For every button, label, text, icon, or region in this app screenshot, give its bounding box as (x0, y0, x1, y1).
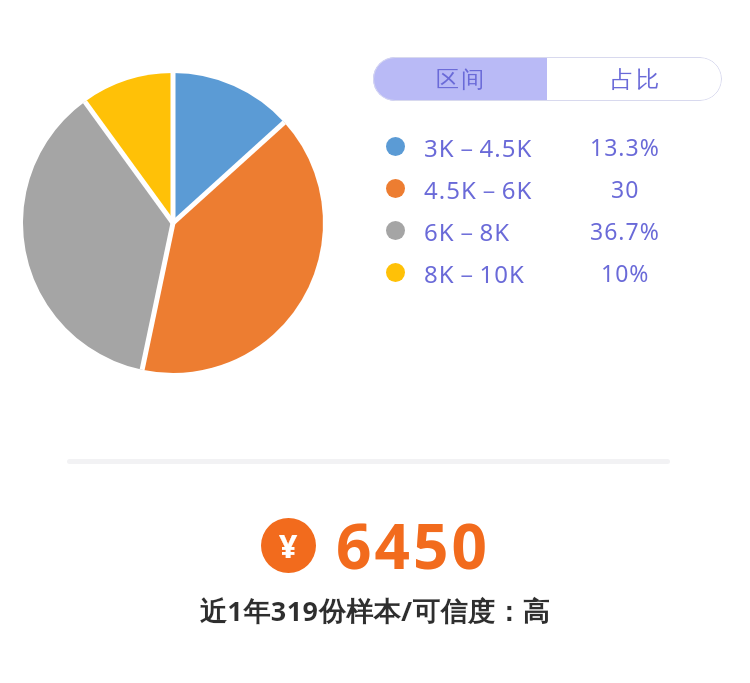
staticText: 10% (601, 257, 650, 288)
button[interactable]: 4.5K－6K (386, 173, 676, 204)
staticText: 13.3% (590, 131, 660, 162)
staticText: 30 (611, 173, 640, 204)
staticText: 36.7% (590, 215, 660, 246)
staticText: 6450 (336, 503, 490, 587)
staticText: 占比 (610, 65, 660, 94)
staticText: 6K－8K (424, 215, 511, 246)
staticText: 区间 (435, 65, 485, 94)
staticText: 近1年319份样本/可信度：高 (0, 592, 750, 629)
button[interactable]: 区间 (373, 57, 547, 101)
other: Currency yuan (261, 518, 316, 573)
button[interactable]: 6K－8K (386, 215, 676, 246)
staticText: 3K－4.5K (424, 131, 533, 162)
button[interactable]: 占比 (547, 57, 722, 101)
staticText: 4.5K－6K (424, 173, 533, 204)
staticText: 8K－10K (424, 257, 525, 288)
button[interactable]: 8K－10K (386, 257, 676, 288)
staticText: ¥ (279, 524, 298, 568)
button[interactable]: 3K－4.5K (386, 131, 676, 162)
